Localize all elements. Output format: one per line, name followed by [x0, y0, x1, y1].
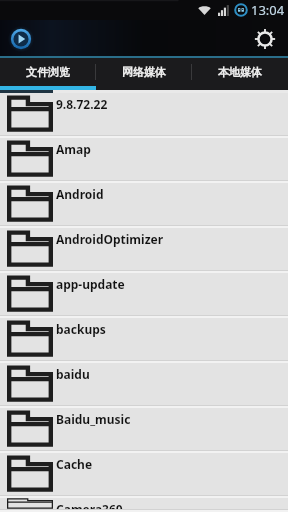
- staticText: 本地媒体: [218, 65, 262, 79]
- staticText: Amap: [56, 141, 91, 157]
- staticText: Baidu_music: [56, 411, 131, 427]
- button[interactable]: Android: [0, 183, 288, 228]
- staticText: Cache: [56, 456, 93, 472]
- button[interactable]: 本地媒体: [192, 58, 288, 86]
- button[interactable]: 9.8.72.22: [0, 93, 288, 138]
- button[interactable]: Amap: [0, 138, 288, 183]
- staticText: AndroidOptimizer: [56, 231, 164, 247]
- staticText: 网络媒体: [122, 65, 166, 79]
- staticText: 13:04: [251, 1, 285, 19]
- button[interactable]: Settings: [250, 24, 280, 54]
- button[interactable]: Cache: [0, 453, 288, 498]
- staticText: Camera360: [56, 501, 123, 509]
- button[interactable]: backups: [0, 318, 288, 363]
- staticText: Android: [56, 186, 104, 202]
- staticText: 文件浏览: [26, 65, 70, 79]
- staticText: app-update: [56, 276, 125, 292]
- button[interactable]: app-update: [0, 273, 288, 318]
- staticText: 9.8.72.22: [56, 96, 108, 112]
- button[interactable]: AndroidOptimizer: [0, 228, 288, 273]
- button[interactable]: Baidu_music: [0, 408, 288, 453]
- button[interactable]: baidu: [0, 363, 288, 408]
- button[interactable]: 网络媒体: [96, 58, 192, 86]
- button[interactable]: 文件浏览: [0, 58, 96, 86]
- button[interactable]: Play: [6, 24, 36, 54]
- staticText: backups: [56, 321, 106, 337]
- button[interactable]: Camera360: [0, 498, 288, 512]
- staticText: baidu: [56, 366, 90, 382]
